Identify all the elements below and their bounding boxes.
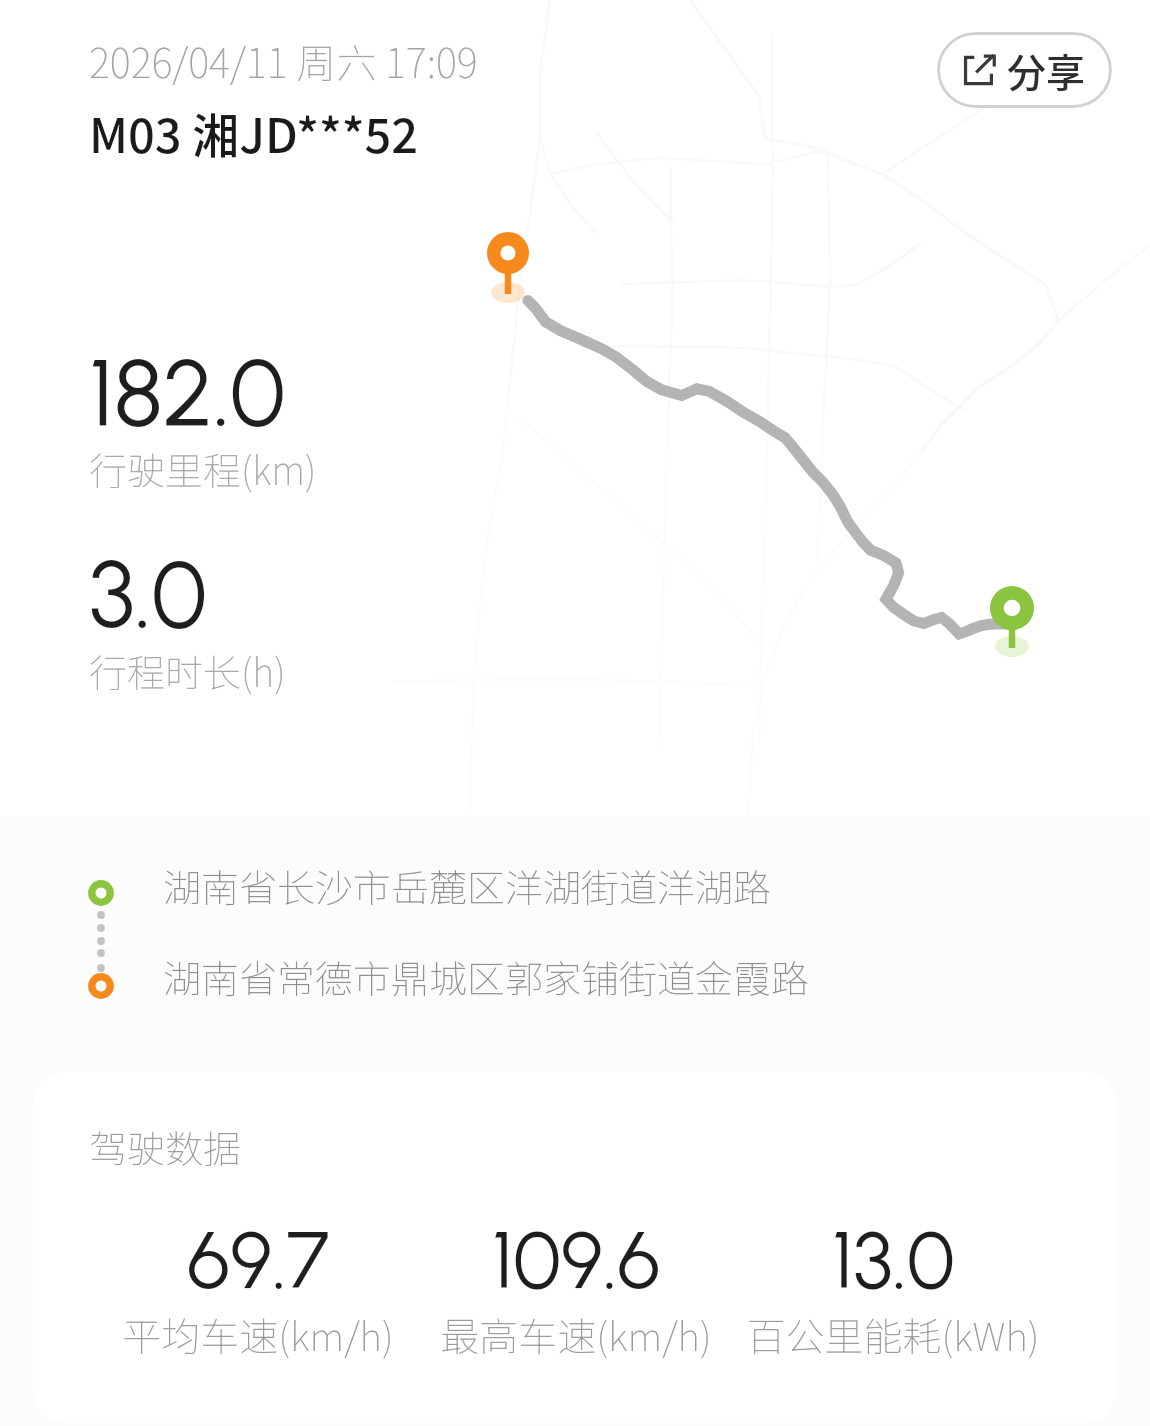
button[interactable]: 69.7 <box>58 1212 458 1364</box>
staticText: 行程时长(h) <box>89 643 286 698</box>
staticText: 湖南省长沙市岳麓区洋湖街道洋湖路 <box>163 858 772 913</box>
staticText: 109.6 <box>492 1212 661 1308</box>
button[interactable]: 湖南省长沙市岳麓区洋湖街道洋湖路 <box>0 846 1150 1036</box>
other: Share <box>961 51 999 89</box>
staticText: 平均车速(km/h) <box>122 1306 394 1362</box>
staticText: M03 湘JD***52 <box>89 98 418 166</box>
staticText: 3.0 <box>89 539 207 651</box>
staticText: 最高车速(km/h) <box>440 1306 712 1362</box>
staticText: 13.0 <box>832 1212 955 1308</box>
staticText: 百公里能耗(kWh) <box>746 1306 1040 1362</box>
staticText: 行驶里程(km) <box>89 441 317 496</box>
button[interactable]: 13.0 <box>693 1212 1093 1364</box>
staticText: 湖南省常德市鼎城区郭家铺街道金霞路 <box>163 949 810 1004</box>
button[interactable]: Share <box>937 32 1112 108</box>
staticText: 69.7 <box>187 1212 330 1308</box>
button[interactable]: 109.6 <box>376 1212 776 1364</box>
staticText: 分享 <box>1007 42 1086 98</box>
staticText: 182.0 <box>89 337 286 449</box>
staticText: 驾驶数据 <box>89 1119 242 1174</box>
staticText: 2026/04/11 周六 17:09 <box>89 32 478 90</box>
